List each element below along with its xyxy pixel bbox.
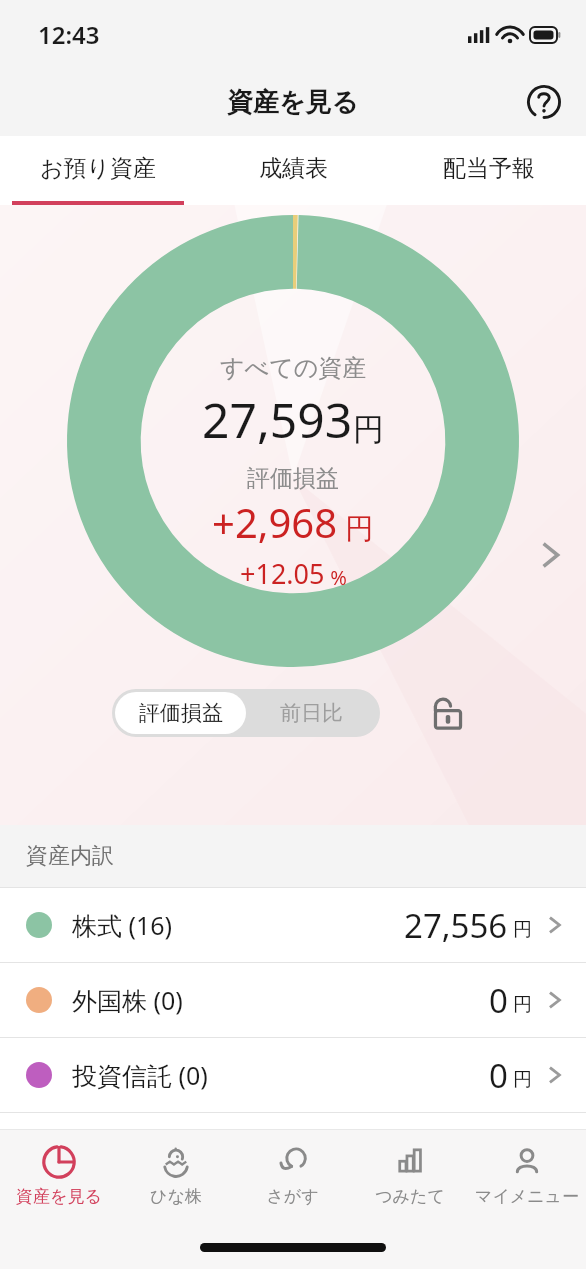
staticText: 前日比 — [280, 700, 343, 726]
staticText: 円 — [508, 916, 532, 942]
button[interactable]: 外国株 (0) — [0, 963, 586, 1037]
button[interactable]: 資産を見る — [0, 1130, 117, 1220]
staticText: 株式 (16) — [72, 908, 173, 942]
button[interactable]: 投資信託 (0) — [0, 1038, 586, 1112]
button[interactable]: 株式 (16) — [0, 888, 586, 962]
staticText: 配当予報 — [443, 154, 535, 183]
staticText: 27,556 — [404, 903, 508, 948]
button[interactable]: ひな株 — [117, 1130, 234, 1220]
staticText: 0 — [489, 978, 508, 1023]
staticText: +2,968 — [212, 495, 338, 549]
staticText: 円 — [508, 1141, 532, 1167]
staticText: 資産内訳 — [26, 842, 114, 870]
button[interactable]: さがす — [234, 1130, 351, 1220]
staticText: 資産を見る — [16, 1186, 102, 1207]
staticText: 12:43 — [38, 18, 100, 51]
button[interactable]: 前日比 — [246, 692, 377, 734]
button[interactable]: マイメニュー — [468, 1130, 585, 1220]
staticText: 成績表 — [259, 154, 328, 183]
staticText: さがす — [266, 1186, 319, 1207]
staticText: すべての資産 — [220, 353, 367, 383]
staticText: 評価損益 — [139, 700, 223, 726]
staticText: つみたて — [375, 1186, 445, 1207]
staticText: 円 — [338, 508, 374, 546]
button[interactable]: Unlock — [422, 687, 474, 739]
button[interactable]: 評価損益 — [115, 692, 246, 734]
staticText: 円 — [353, 410, 384, 449]
staticText: 評価損益 — [247, 464, 339, 493]
button[interactable]: Help — [518, 76, 570, 128]
staticText: 27,593 — [202, 387, 353, 452]
staticText: 投資信託 (0) — [72, 1058, 208, 1092]
staticText: ひな株 — [150, 1186, 202, 1207]
staticText: 0 — [489, 1053, 508, 1098]
button[interactable]: 配当予報 — [391, 136, 586, 201]
button[interactable]: 現金 — [0, 1113, 586, 1187]
staticText: マイメニュー — [475, 1186, 579, 1207]
staticText: お預り資産 — [40, 154, 157, 183]
button[interactable]: Next — [524, 528, 578, 582]
staticText: 現金 — [72, 1135, 122, 1166]
staticText: 円 — [508, 991, 532, 1017]
staticText: 円 — [508, 1066, 532, 1092]
staticText: % — [325, 564, 347, 591]
staticText: 外国株 (0) — [72, 983, 183, 1017]
button[interactable]: つみたて — [351, 1130, 468, 1220]
staticText: 資産を見る — [227, 86, 359, 119]
button[interactable]: 成績表 — [196, 136, 391, 201]
staticText: +12.05 — [240, 555, 325, 592]
button[interactable]: お預り資産 — [0, 136, 196, 201]
